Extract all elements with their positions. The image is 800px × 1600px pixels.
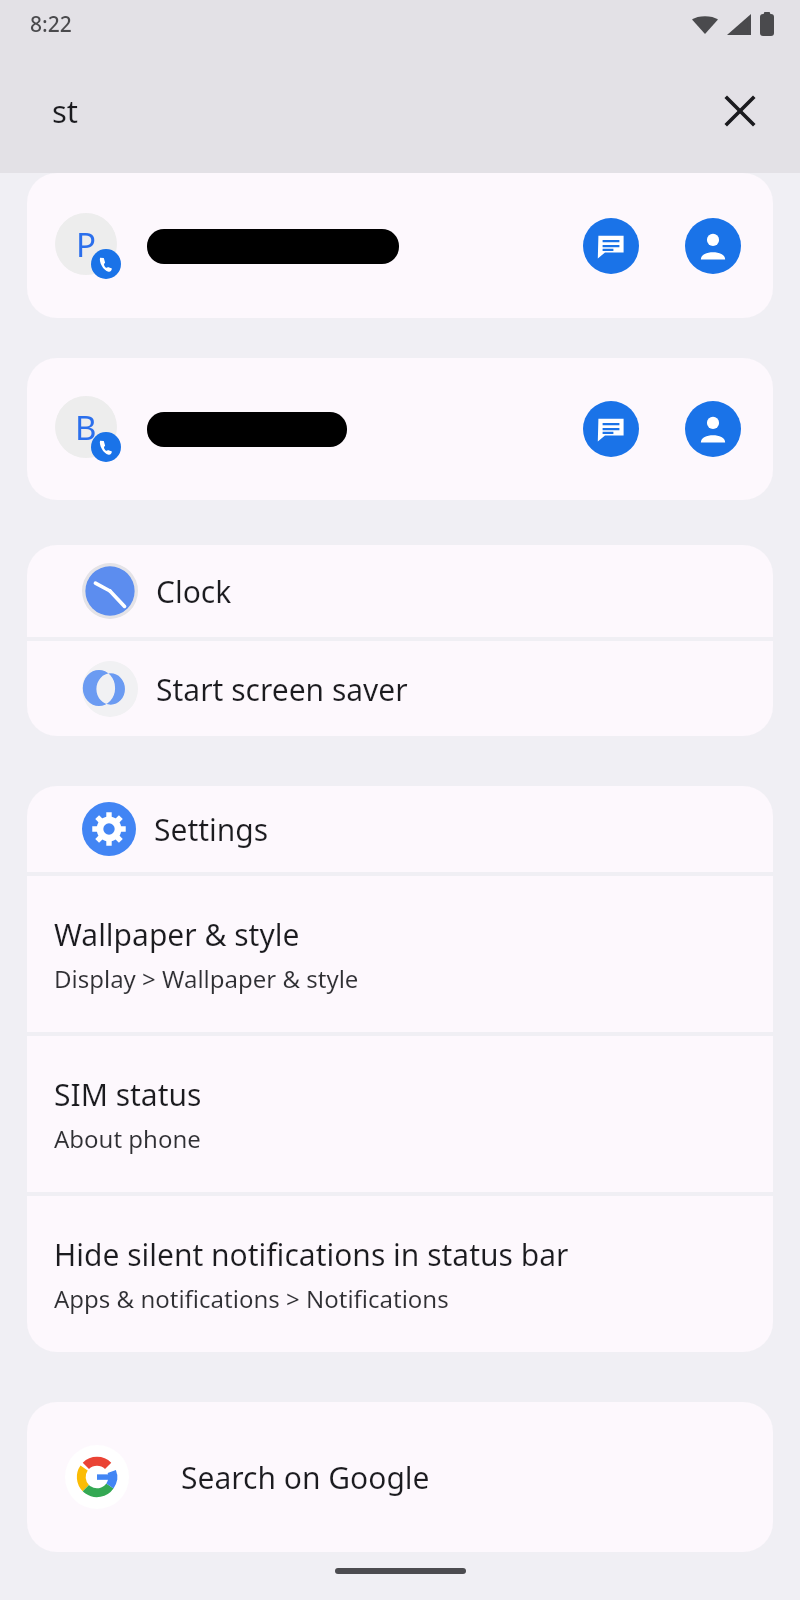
staticText: 8:22 — [30, 10, 72, 39]
button[interactable]: SIM status — [27, 1036, 773, 1192]
button[interactable]: Send message — [583, 401, 639, 457]
staticText: Wallpaper & style — [54, 914, 300, 955]
staticText: Apps & notifications > Notifications — [54, 1282, 449, 1315]
button[interactable]: Hide silent notifications in status bar — [27, 1196, 773, 1352]
button[interactable]: Open contact — [685, 401, 741, 457]
staticText: Display > Wallpaper & style — [54, 962, 359, 995]
staticText: Hide silent notifications in status bar — [54, 1234, 569, 1275]
staticText: Search on Google — [181, 1457, 430, 1498]
button[interactable]: Clear search — [712, 83, 768, 139]
button[interactable]: Open contact — [685, 218, 741, 274]
staticText: P — [76, 222, 96, 267]
staticText: SIM status — [54, 1074, 202, 1115]
staticText: B — [75, 405, 97, 450]
button[interactable]: P — [27, 173, 773, 318]
button[interactable]: B — [27, 358, 773, 500]
button[interactable]: Wallpaper & style — [27, 876, 773, 1032]
staticText: Settings — [154, 809, 269, 850]
staticText: st — [52, 90, 712, 132]
button[interactable]: Settings — [27, 786, 773, 872]
staticText: Start screen saver — [156, 669, 408, 710]
staticText: Clock — [156, 571, 232, 612]
button[interactable]: Send message — [583, 218, 639, 274]
button[interactable]: Search on Google — [27, 1402, 773, 1552]
button[interactable]: Clock — [27, 545, 773, 637]
staticText: About phone — [54, 1122, 201, 1155]
button[interactable]: Start screen saver — [27, 641, 773, 736]
